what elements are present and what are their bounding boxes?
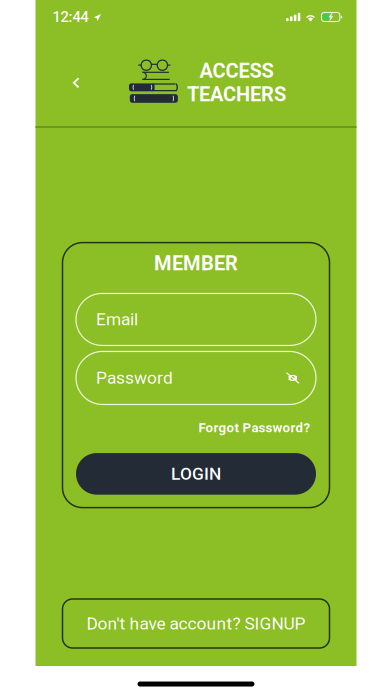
staticText: MEMBER bbox=[154, 252, 238, 275]
staticText: Don't have account? SIGNUP bbox=[86, 613, 305, 634]
staticText: ACCESS bbox=[200, 59, 274, 83]
staticText: TEACHERS bbox=[187, 83, 286, 106]
staticText: 12:44 bbox=[52, 8, 88, 26]
staticText: Email bbox=[96, 309, 138, 330]
button[interactable]: Back bbox=[60, 64, 93, 101]
button[interactable]: Don't have account? SIGNUP bbox=[62, 599, 329, 648]
staticText: Forgot Password? bbox=[198, 420, 310, 435]
staticText: Password bbox=[96, 368, 173, 388]
button[interactable]: LOGIN bbox=[76, 453, 316, 495]
staticText: LOGIN bbox=[171, 464, 221, 484]
button[interactable]: Forgot Password? bbox=[81, 420, 310, 435]
